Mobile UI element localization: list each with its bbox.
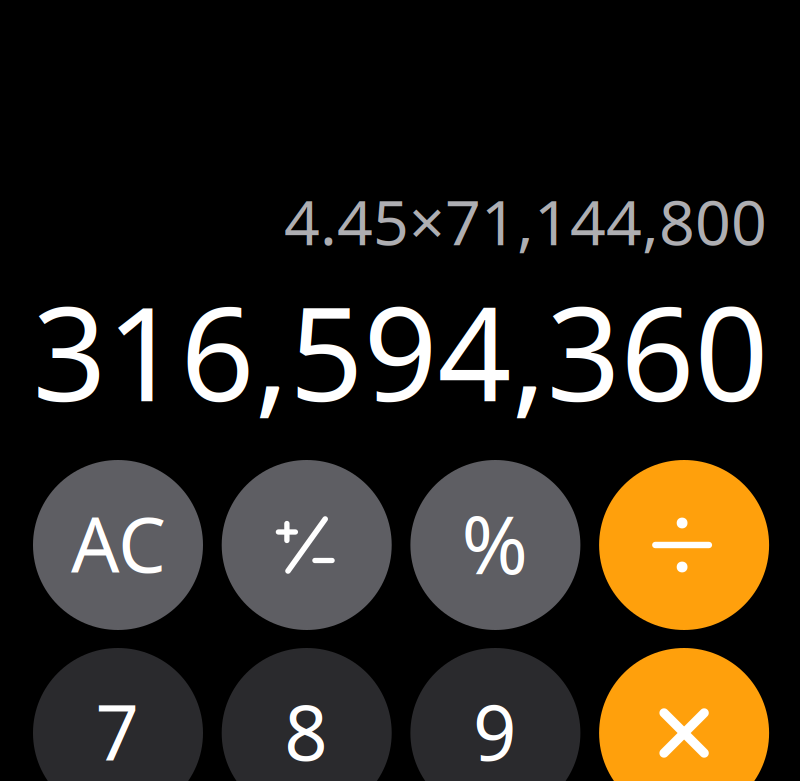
button[interactable]: AC — [33, 460, 203, 630]
button[interactable]: 8 — [222, 648, 392, 781]
button[interactable]: % — [410, 460, 580, 630]
staticText: 7 — [95, 680, 138, 781]
staticText: AC — [71, 492, 166, 593]
button[interactable]: Toggle sign — [222, 460, 392, 630]
staticText: 4.45×71,144,800 — [284, 179, 767, 263]
button[interactable]: Multiply — [599, 648, 769, 781]
staticText: 316,594,360 — [32, 265, 768, 437]
staticText: 9 — [473, 680, 516, 781]
staticText: % — [461, 490, 527, 596]
button[interactable]: 9 — [410, 648, 580, 781]
button[interactable]: 7 — [33, 648, 203, 781]
button[interactable]: Divide — [599, 460, 769, 630]
staticText: 8 — [284, 680, 327, 781]
